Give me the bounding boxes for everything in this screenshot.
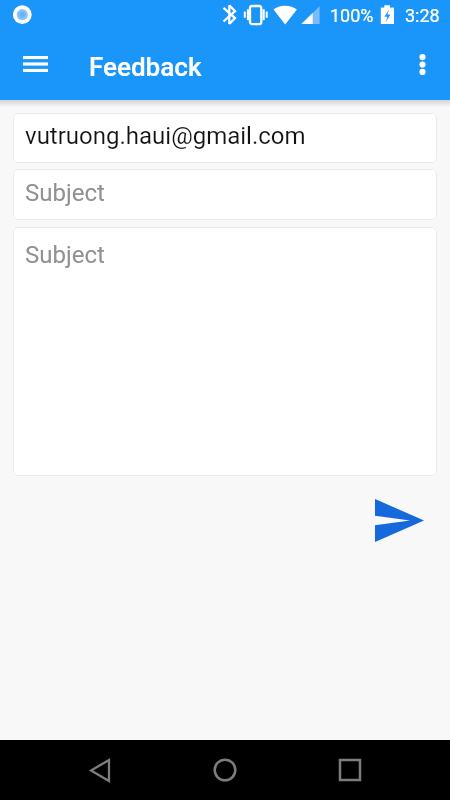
button[interactable]: Open navigation drawer (11, 40, 59, 88)
button[interactable]: Recent apps (326, 746, 374, 794)
staticText: Subject (25, 179, 105, 207)
button[interactable]: Subject (13, 227, 437, 476)
staticText: Subject (25, 241, 105, 269)
staticText: 100% (330, 5, 374, 26)
staticText: vutruong.haui@gmail.com (25, 122, 306, 150)
button[interactable]: More options (398, 40, 446, 88)
button[interactable]: Send (367, 490, 431, 550)
button[interactable]: Back (76, 746, 124, 794)
button[interactable]: vutruong.haui@gmail.com (13, 113, 437, 163)
button[interactable]: Home (201, 746, 249, 794)
staticText: Feedback (89, 52, 202, 82)
staticText: 3:28 (405, 5, 440, 26)
button[interactable]: Subject (13, 169, 437, 220)
